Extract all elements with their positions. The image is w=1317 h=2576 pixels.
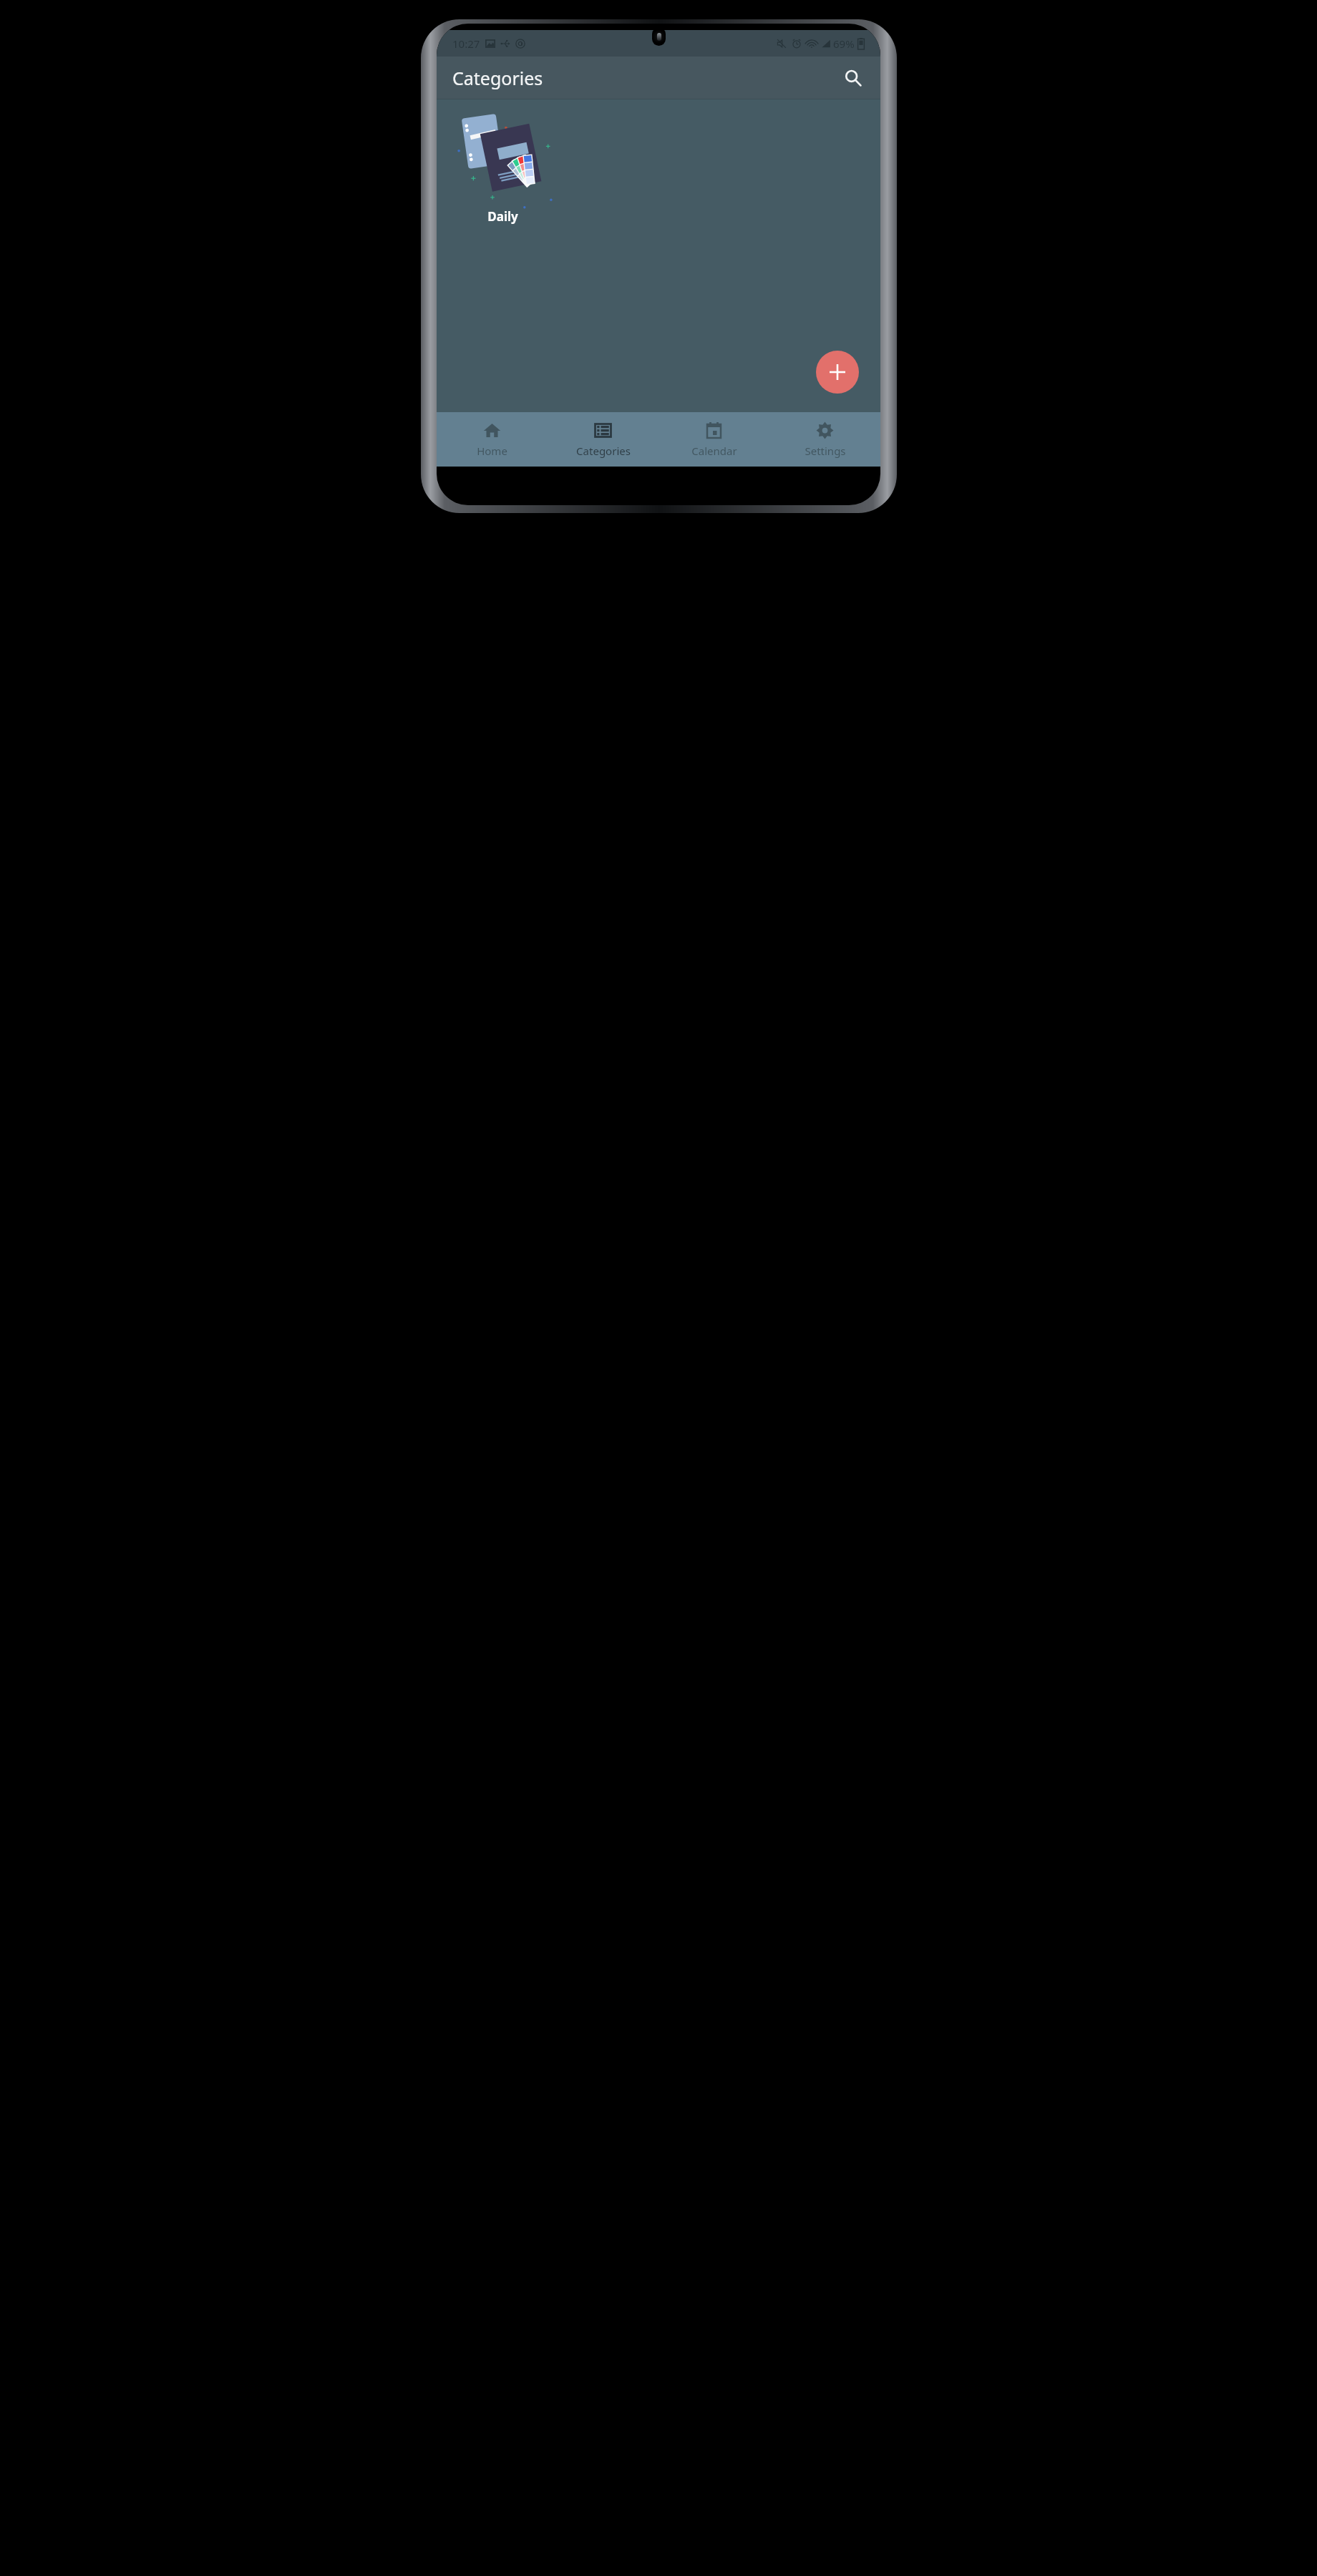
staticText: Daily bbox=[487, 208, 518, 225]
staticText: Categories bbox=[576, 444, 631, 458]
staticText: Home bbox=[477, 444, 507, 458]
button[interactable]: Search bbox=[836, 61, 870, 95]
button[interactable]: Daily bbox=[452, 105, 553, 225]
staticText: 10:27 bbox=[452, 36, 480, 51]
staticText: Settings bbox=[805, 444, 846, 458]
button[interactable]: Settings bbox=[769, 412, 880, 467]
staticText: Calendar bbox=[691, 444, 737, 458]
staticText: Categories bbox=[452, 66, 543, 90]
button[interactable]: Add category bbox=[816, 351, 859, 394]
button[interactable]: Calendar bbox=[658, 412, 769, 467]
button[interactable]: Categories bbox=[548, 412, 658, 467]
button[interactable]: Home bbox=[437, 412, 548, 467]
staticText: 69% bbox=[833, 36, 855, 51]
